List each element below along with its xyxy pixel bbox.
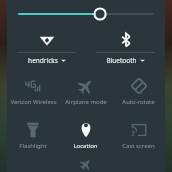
button[interactable]: Location xyxy=(59,119,112,155)
button[interactable]: Cast screen xyxy=(112,119,165,155)
button[interactable]: Flashlight xyxy=(7,119,59,155)
button[interactable]: Airplane mode xyxy=(59,75,112,111)
staticText: Auto-rotate xyxy=(122,98,155,106)
button[interactable] xyxy=(74,158,98,170)
staticText: Airplane mode xyxy=(65,98,107,106)
staticText: hendricks xyxy=(28,56,58,65)
staticText: Bluetooth xyxy=(106,56,137,65)
button[interactable]: Brightness xyxy=(7,4,165,24)
button[interactable]: Auto-rotate xyxy=(112,75,165,111)
staticText: Verizon Wireless xyxy=(10,98,57,106)
staticText: Cast screen xyxy=(122,142,155,150)
button[interactable]: Verizon Wireless xyxy=(7,75,59,111)
staticText: Location xyxy=(73,142,98,150)
button[interactable]: hendricks xyxy=(7,30,86,68)
button[interactable]: Bluetooth xyxy=(86,30,165,68)
staticText: Flashlight xyxy=(19,142,47,150)
